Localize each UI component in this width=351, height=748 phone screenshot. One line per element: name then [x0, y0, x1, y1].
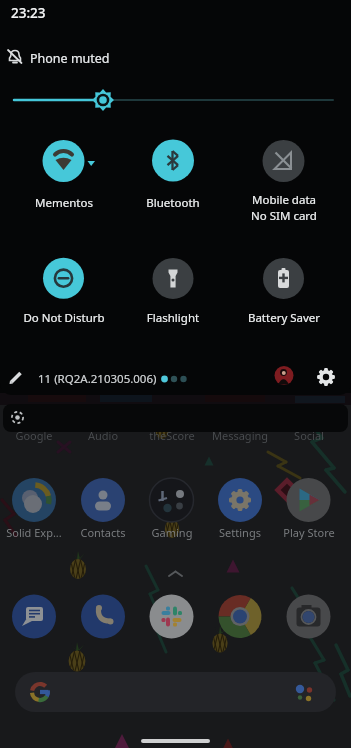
staticText: Phone muted: [30, 50, 110, 67]
staticText: Mementos: [0, 195, 139, 211]
button[interactable]: [81, 478, 125, 522]
button[interactable]: [218, 478, 262, 522]
staticText: No SIM card: [209, 208, 351, 224]
button[interactable]: [313, 364, 339, 390]
button[interactable]: [150, 478, 194, 522]
staticText: Google: [0, 428, 109, 444]
button[interactable]: [81, 595, 125, 639]
staticText: Battery Saver: [209, 310, 351, 326]
staticText: Mobile data: [209, 192, 351, 208]
button[interactable]: [150, 595, 194, 639]
staticText: Settings: [165, 525, 315, 541]
button[interactable]: [4, 365, 30, 391]
button[interactable]: [142, 131, 203, 221]
button[interactable]: [12, 595, 56, 639]
button[interactable]: [15, 672, 336, 712]
staticText: 23:23: [11, 4, 46, 22]
staticText: Flashlight: [98, 310, 248, 326]
staticText: Social: [234, 428, 351, 444]
staticText: Messaging: [165, 428, 315, 444]
button[interactable]: [3, 404, 348, 432]
button[interactable]: [142, 248, 203, 338]
button[interactable]: [12, 478, 56, 522]
button[interactable]: [14, 85, 314, 115]
staticText: 11 (RQ2A.210305.006): [38, 371, 157, 387]
staticText: Do Not Disturb: [0, 310, 139, 326]
button[interactable]: [33, 131, 94, 221]
staticText: Solid Exp...: [0, 525, 109, 541]
staticText: Play Store: [234, 525, 351, 541]
staticText: Contacts: [28, 525, 178, 541]
button[interactable]: [33, 248, 94, 338]
button[interactable]: [218, 595, 262, 639]
staticText: Gaming: [97, 525, 247, 541]
staticText: theScore: [97, 428, 247, 444]
staticText: Audio: [28, 428, 178, 444]
button[interactable]: [253, 248, 314, 338]
button[interactable]: [272, 363, 297, 388]
button[interactable]: [287, 478, 331, 522]
staticText: Bluetooth: [98, 195, 248, 211]
button[interactable]: [253, 131, 314, 221]
button[interactable]: [287, 595, 331, 639]
